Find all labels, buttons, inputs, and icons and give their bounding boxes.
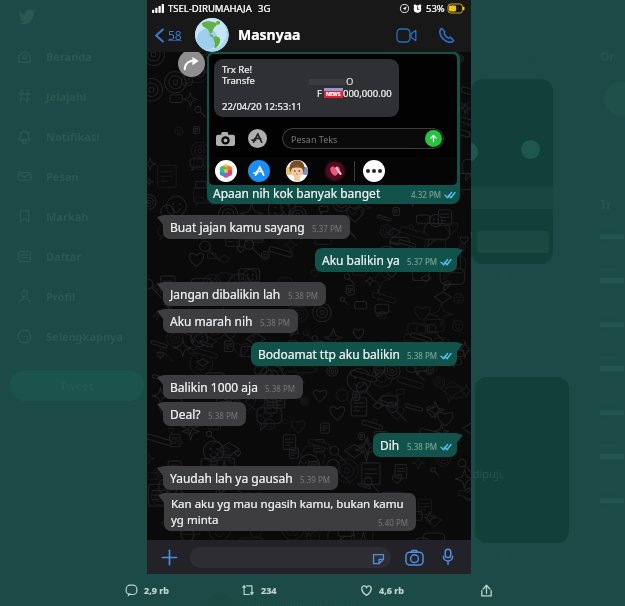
staticText: 5.38 PM <box>208 410 239 421</box>
button[interactable]: Jangan dibalikin lah <box>163 282 326 306</box>
staticText: Aku marah nih <box>170 313 253 329</box>
staticText: NEWS <box>326 91 341 98</box>
staticText: yg minta <box>171 512 219 528</box>
button[interactable]: Balikin 1000 aja <box>163 375 303 399</box>
staticText: 5.38 PM <box>265 383 296 394</box>
staticText: 5.38 PM <box>407 441 438 452</box>
staticText: 58 <box>168 27 182 43</box>
staticText: Transfe <box>222 74 255 87</box>
staticText: n dipuji, <box>463 466 505 481</box>
staticText: ya <box>462 226 473 240</box>
button[interactable]: Forward <box>178 50 205 77</box>
staticText: 5.38 PM <box>288 290 319 301</box>
staticText: 5.37 PM <box>407 256 438 267</box>
button[interactable]: Deal? <box>163 402 246 426</box>
staticText: Balikin 1000 aja <box>170 379 258 395</box>
staticText: Jelajahi <box>46 89 87 104</box>
staticText: Beranda <box>46 49 92 64</box>
button[interactable]: Video call <box>393 22 419 48</box>
staticText: s pacar saya girls <box>463 54 536 66</box>
staticText: Profil <box>46 289 76 304</box>
staticText: 2,9 rb <box>144 584 169 596</box>
button[interactable] <box>190 547 391 568</box>
button[interactable]: Dih <box>373 433 457 457</box>
staticText: 5.38 PM <box>260 317 291 328</box>
button[interactable]: 58 <box>155 27 182 43</box>
staticText: Markah <box>46 209 89 224</box>
staticText: Jangan dibalikin lah <box>170 286 281 302</box>
staticText: Selengkapnya <box>46 329 123 344</box>
button[interactable]: Camera <box>403 546 425 568</box>
staticText: Trx Re! <box>222 63 253 76</box>
staticText: F <box>317 87 322 100</box>
button[interactable]: Kan aku yg mau ngasih kamu, bukan kamu <box>164 493 416 531</box>
staticText: Bodoamat ttp aku balikin <box>258 346 400 362</box>
button[interactable]: Trx Re! <box>207 51 460 204</box>
staticText: 5.40 PM <box>378 517 409 528</box>
staticText: 22/04/20 12:53:11 <box>222 100 302 113</box>
staticText: Pesan <box>46 169 79 184</box>
button[interactable]: 4,6 rb <box>360 581 404 599</box>
button[interactable]: Voice call <box>433 22 459 48</box>
staticText: Kan aku yg mau ngasih kamu, bukan kamu <box>171 496 404 512</box>
button[interactable]: Attach <box>158 546 180 568</box>
button[interactable]: Buat jajan kamu sayang <box>163 215 350 239</box>
staticText: 53% <box>426 2 445 15</box>
staticText: 234 <box>261 584 277 596</box>
staticText: 5.39 PM <box>300 474 331 485</box>
staticText: TSEL-DIRUMAHAJA <box>168 2 252 15</box>
button[interactable]: Yaudah lah ya gausah <box>163 466 338 490</box>
staticText: Apaan nih kok banyak banget <box>213 185 381 201</box>
button[interactable]: Share <box>477 581 495 599</box>
button[interactable]: 2,9 rb <box>125 581 169 599</box>
staticText: 5.38 PM <box>407 350 438 361</box>
button[interactable]: Voice message <box>437 546 459 568</box>
staticText: Yaudah lah ya gausah <box>170 470 293 486</box>
button[interactable]: Aku marah nih <box>163 309 298 333</box>
staticText: Daftar <box>46 249 82 264</box>
staticText: Buat jajan kamu sayang <box>170 219 305 235</box>
button[interactable]: Bodoamat ttp aku balikin <box>251 342 457 366</box>
staticText: Aku balikin ya <box>322 252 400 268</box>
button[interactable]: 234 <box>241 581 277 599</box>
staticText: O <box>346 75 354 88</box>
staticText: Masnyaa <box>238 25 301 44</box>
staticText: 4,6 rb <box>379 584 404 596</box>
staticText: 3G <box>258 2 271 15</box>
staticText: Notifikasi <box>46 129 100 144</box>
button[interactable]: Aku balikin ya <box>315 248 457 272</box>
staticText: Tr <box>600 196 612 212</box>
staticText: Dih <box>380 437 400 453</box>
staticText: Pesan Teks <box>291 133 338 145</box>
staticText: 000,000.00 <box>343 87 392 100</box>
staticText: n <box>463 484 470 499</box>
staticText: Deal? <box>170 406 201 422</box>
staticText: 4.32 PM <box>411 189 442 200</box>
staticText: Or <box>600 48 615 64</box>
staticText: 5.37 PM <box>312 223 343 234</box>
